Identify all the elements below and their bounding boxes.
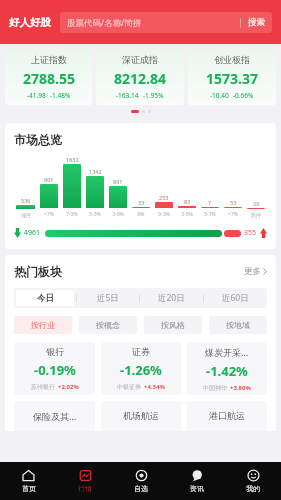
staticText: 自选 (134, 484, 148, 493)
button[interactable]: 按地域 (209, 316, 267, 334)
staticText: 5-3% (89, 211, 101, 218)
staticText: 苏州银行 (31, 383, 55, 391)
button[interactable]: 我的 (225, 462, 281, 500)
staticText: +2.02% (58, 383, 79, 391)
staticText: 7-5% (66, 211, 78, 218)
staticText: 按概念 (96, 320, 120, 330)
staticText: 7 (208, 199, 212, 206)
staticText: 中国神华 (203, 384, 227, 392)
staticText: 股票代码/名称/简拼 (67, 17, 240, 29)
staticText: +7% (44, 211, 54, 218)
staticText: 跌停 (251, 212, 261, 218)
button[interactable]: 行情 (57, 462, 113, 500)
button[interactable]: 资讯 (169, 462, 225, 500)
staticText: 深证成指 (122, 54, 158, 65)
staticText: 253 (159, 194, 169, 201)
staticText: 搜索 (248, 17, 265, 28)
staticText: 证券 (132, 346, 150, 357)
staticText: 资讯 (190, 484, 204, 493)
staticText: 热门板块 (14, 264, 62, 279)
button[interactable]: 港口航运 (187, 401, 267, 431)
staticText: 市场总览 (14, 132, 62, 147)
staticText: 891 (113, 178, 123, 185)
staticText: -1.48% (50, 91, 71, 100)
staticText: 按风格 (161, 320, 185, 330)
button[interactable]: 近5日 (79, 290, 137, 306)
staticText: 8212.84 (114, 69, 166, 88)
staticText: 536 (21, 197, 31, 204)
staticText: 3-5% (181, 211, 193, 218)
button[interactable]: 深证成指 (96, 49, 184, 105)
staticText: +4.34% (144, 383, 165, 391)
staticText: -1.26% (120, 361, 162, 379)
staticText: 更多 (244, 266, 261, 277)
staticText: 我的 (246, 484, 260, 493)
button[interactable]: 近20日 (142, 290, 201, 306)
staticText: -163.14 (116, 91, 139, 100)
staticText: -0.19% (34, 361, 76, 379)
staticText: 1573.37 (206, 69, 258, 88)
staticText: 29 (253, 200, 260, 207)
staticText: -41.98 (27, 91, 46, 100)
staticText: 首页 (22, 484, 36, 493)
staticText: 2788.55 (23, 69, 75, 88)
staticText: 5-7% (204, 211, 216, 218)
staticText: 创业板指 (214, 54, 250, 65)
staticText: -1.95% (143, 91, 164, 100)
staticText: 1342 (89, 168, 102, 175)
button[interactable]: 银行 (14, 342, 95, 395)
staticText: 0% (137, 211, 145, 218)
staticText: 上证指数 (31, 54, 67, 65)
staticText: 银行 (46, 346, 64, 357)
staticText: 33 (138, 199, 145, 206)
staticText: 港口航运 (209, 410, 245, 421)
button[interactable]: 首页 (0, 462, 57, 500)
staticText: 355 (244, 228, 257, 238)
button[interactable]: 保险及其… (14, 401, 95, 431)
button[interactable]: 按风格 (144, 316, 202, 334)
staticText: 近20日 (158, 292, 185, 304)
button[interactable]: 按概念 (79, 316, 137, 334)
staticText: -1.42% (206, 362, 248, 380)
staticText: 保险及其… (33, 410, 77, 422)
button[interactable]: 股票代码/名称/简拼 (60, 12, 272, 33)
staticText: +7% (228, 211, 238, 218)
staticText: +3.80% (230, 384, 251, 392)
button[interactable]: 自选 (113, 462, 169, 500)
button[interactable]: 上证指数 (5, 49, 92, 105)
staticText: 近5日 (97, 292, 119, 304)
staticText: 3-0% (112, 211, 124, 218)
staticText: 按地域 (226, 320, 250, 330)
button[interactable]: 更多 (244, 266, 267, 277)
staticText: 涨停 (21, 212, 31, 218)
staticText: 901 (44, 176, 54, 183)
staticText: 行情 (78, 484, 92, 493)
staticText: -10.40 (210, 91, 229, 100)
staticText: 83 (184, 198, 191, 205)
button[interactable]: 搜索 (241, 17, 272, 28)
button[interactable]: 机场航运 (101, 401, 181, 431)
button[interactable]: 今日 (16, 290, 74, 306)
staticText: 4961 (24, 228, 41, 238)
staticText: 好人好股 (9, 16, 51, 29)
staticText: 按行业 (31, 320, 55, 330)
staticText: 机场航运 (123, 410, 159, 421)
staticText: -0.66% (233, 91, 254, 100)
button[interactable]: 按行业 (14, 316, 72, 334)
button[interactable]: 近60日 (206, 290, 265, 306)
staticText: 煤炭开采… (205, 346, 249, 358)
button[interactable]: 煤炭开采… (187, 342, 267, 395)
staticText: 今日 (37, 293, 54, 304)
staticText: 53 (230, 199, 237, 206)
staticText: 1632 (66, 156, 79, 163)
button[interactable]: 创业板指 (188, 49, 276, 105)
staticText: 0-3% (158, 211, 170, 218)
button[interactable]: 证券 (101, 342, 181, 395)
staticText: 近60日 (222, 292, 249, 304)
staticText: 中银证券 (117, 383, 141, 391)
